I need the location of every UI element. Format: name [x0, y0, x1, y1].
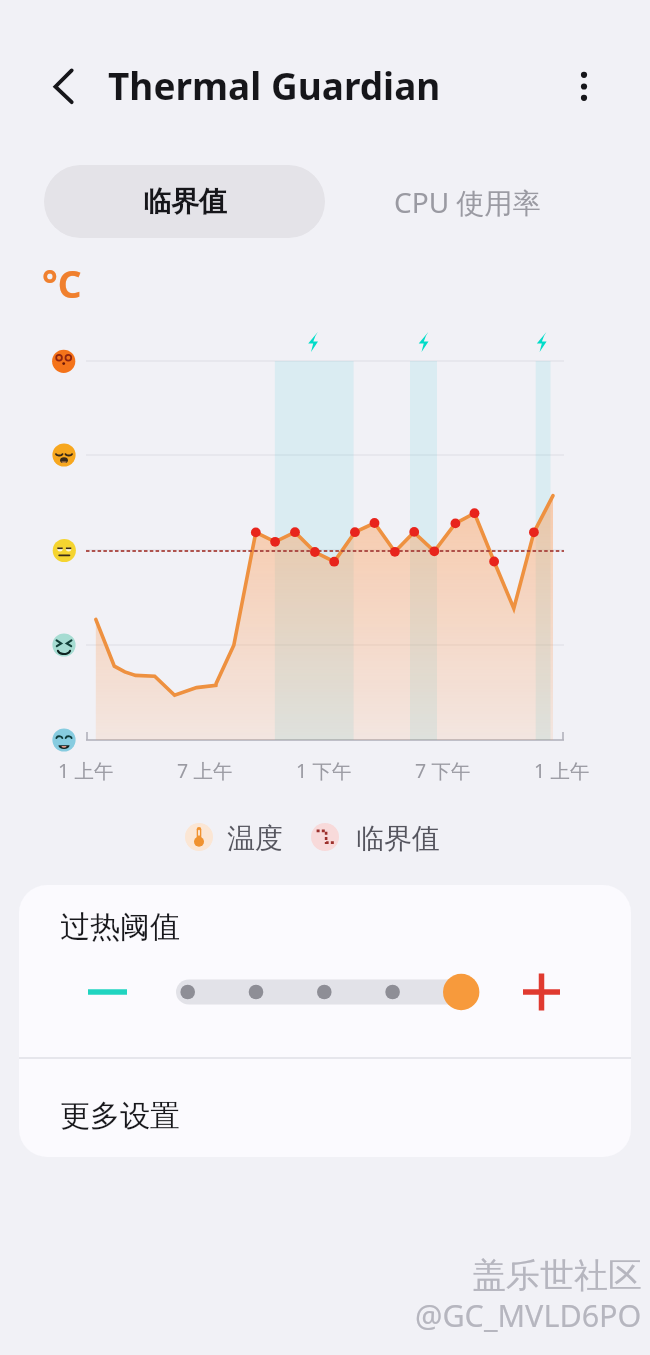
- staticText: 温度: [227, 821, 283, 856]
- staticText: 7 上午: [177, 757, 233, 784]
- staticText: 临界值: [143, 184, 227, 219]
- staticText: 更多设置: [60, 1097, 180, 1135]
- staticText: 1 上午: [58, 757, 114, 784]
- staticText: 7 下午: [415, 757, 471, 784]
- button[interactable]: Overheat threshold slider: [157, 961, 502, 1017]
- button[interactable]: 临界值: [44, 165, 325, 238]
- button[interactable]: More options: [564, 58, 604, 98]
- staticText: CPU 使用率: [394, 183, 541, 221]
- button[interactable]: Back: [35, 58, 92, 115]
- button[interactable]: Decrease threshold: [65, 961, 127, 1017]
- staticText: 1 上午: [534, 757, 590, 784]
- button[interactable]: Increase threshold: [513, 961, 571, 1017]
- staticText: 盖乐世社区: [472, 1254, 642, 1297]
- button[interactable]: 更多设置: [19, 1059, 631, 1157]
- staticText: 临界值: [356, 821, 440, 856]
- button[interactable]: CPU 使用率: [327, 165, 608, 238]
- staticText: 1 下午: [296, 757, 352, 784]
- staticText: Thermal Guardian: [108, 60, 441, 110]
- staticText: @GC_MVLD6PO: [415, 1294, 642, 1336]
- staticText: °C: [42, 258, 82, 308]
- staticText: 过热阈值: [60, 908, 180, 946]
